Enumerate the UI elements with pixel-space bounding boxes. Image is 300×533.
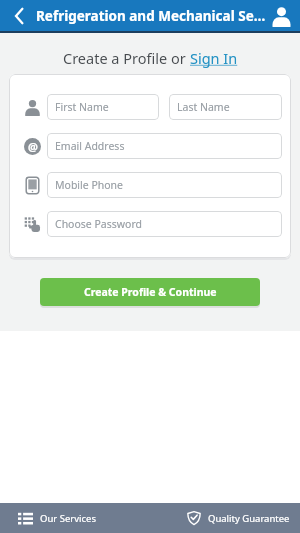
staticText: Last Name	[177, 100, 230, 114]
button[interactable]: Mobile Phone	[55, 172, 282, 198]
staticText: Choose Password	[55, 217, 143, 231]
button[interactable]: Last Name	[177, 94, 282, 120]
button[interactable]	[10, 6, 30, 26]
staticText: First Name	[55, 100, 109, 114]
staticText: @	[28, 139, 38, 154]
button[interactable]: Our Services	[18, 511, 96, 526]
staticText: Email Address	[55, 139, 125, 153]
button[interactable]	[269, 4, 293, 28]
staticText: Mobile Phone	[55, 178, 124, 192]
button[interactable]: Sign In	[190, 48, 238, 68]
staticText: Create a Profile or	[63, 48, 190, 68]
staticText: Create Profile & Continue	[84, 285, 217, 299]
staticText: Our Services	[40, 512, 96, 525]
button[interactable]: Choose Password	[55, 211, 282, 237]
staticText: Quality Guarantee	[208, 512, 290, 525]
button[interactable]: Quality Guarantee	[187, 511, 290, 525]
button[interactable]: First Name	[55, 94, 159, 120]
button[interactable]: Create Profile & Continue	[40, 278, 260, 306]
staticText: Refrigeration and Mechanical Services	[36, 7, 269, 25]
button[interactable]: Email Address	[55, 133, 282, 159]
